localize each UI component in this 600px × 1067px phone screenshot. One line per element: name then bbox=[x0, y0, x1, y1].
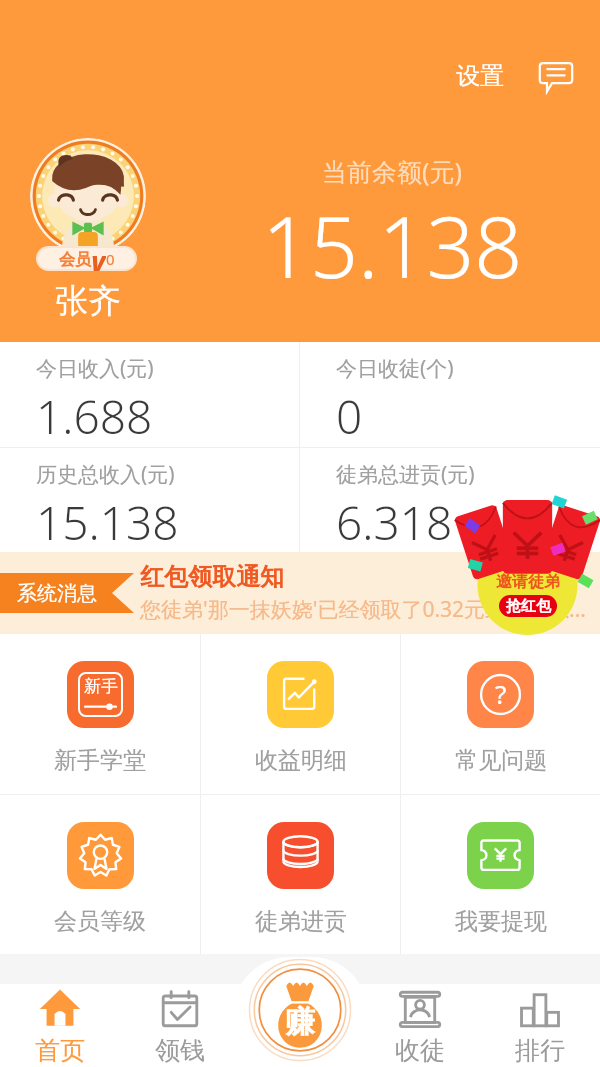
staticText: 收徒 bbox=[395, 1035, 445, 1066]
staticText: ? bbox=[495, 676, 507, 711]
staticText: 您徒弟'那一抹妖娆'已经领取了0.32元红包，系... bbox=[140, 595, 586, 624]
staticText: 系统消息 bbox=[17, 581, 97, 606]
staticText: 当前余额(元) bbox=[322, 154, 463, 188]
button[interactable]: 赚钱 bbox=[249, 959, 351, 1061]
staticText: V bbox=[91, 247, 106, 271]
staticText: 0 bbox=[336, 385, 363, 447]
staticText: 今日收徒(个) bbox=[336, 354, 454, 383]
staticText: 15.138 bbox=[262, 188, 523, 302]
button[interactable]: ? bbox=[401, 634, 600, 794]
staticText: 徒弟总进贡(元) bbox=[336, 460, 475, 489]
staticText: 0 bbox=[106, 249, 115, 269]
button[interactable]: 收益明细 bbox=[201, 634, 400, 794]
button[interactable]: 会员等级 bbox=[0, 795, 200, 954]
button[interactable]: 头像 bbox=[30, 138, 146, 254]
staticText: 今日收入(元) bbox=[36, 354, 154, 383]
staticText: 领钱 bbox=[155, 1035, 205, 1066]
staticText: 邀请徒弟 bbox=[496, 572, 560, 592]
button[interactable]: 系统消息 bbox=[0, 552, 600, 634]
staticText: 会员等级 bbox=[54, 907, 146, 936]
button[interactable]: 领钱 bbox=[120, 988, 240, 1067]
button[interactable]: 徒弟进贡 bbox=[201, 795, 400, 954]
staticText: 排行 bbox=[515, 1035, 565, 1066]
staticText: 新手 bbox=[84, 676, 118, 697]
staticText: 张齐 bbox=[30, 280, 146, 322]
staticText: 15.138 bbox=[36, 491, 179, 552]
button[interactable]: 排行 bbox=[480, 988, 600, 1067]
button[interactable]: 徒弟总进贡(元) bbox=[300, 448, 600, 552]
staticText: 首页 bbox=[35, 1035, 85, 1066]
staticText: 历史总收入(元) bbox=[36, 460, 175, 489]
button[interactable]: 消息 bbox=[534, 54, 578, 98]
staticText: 6.318 bbox=[336, 491, 453, 552]
staticText: 收益明细 bbox=[255, 746, 347, 775]
button[interactable]: 今日收徒(个) bbox=[300, 342, 600, 447]
staticText: 红包领取通知 bbox=[140, 562, 284, 592]
button[interactable]: 新手 bbox=[0, 634, 200, 794]
button[interactable]: 历史总收入(元) bbox=[0, 448, 299, 552]
staticText: 赚 bbox=[285, 1003, 315, 1041]
button[interactable]: 首页 bbox=[0, 988, 120, 1067]
staticText: 常见问题 bbox=[455, 746, 547, 775]
button[interactable]: 收徒 bbox=[360, 988, 480, 1067]
button[interactable]: 设置 bbox=[450, 55, 510, 97]
staticText: 新手学堂 bbox=[54, 746, 146, 775]
button[interactable]: 今日收入(元) bbox=[0, 342, 299, 447]
button[interactable]: 我要提现 bbox=[401, 795, 600, 954]
staticText: 设置 bbox=[456, 61, 504, 91]
staticText: 1.688 bbox=[36, 385, 153, 447]
button[interactable]: 邀请徒弟抢红包 bbox=[455, 490, 600, 622]
staticText: 会员 bbox=[59, 250, 91, 270]
staticText: 抢红包 bbox=[506, 597, 551, 616]
button[interactable]: 会员 bbox=[36, 246, 137, 271]
staticText: 徒弟进贡 bbox=[255, 907, 347, 936]
staticText: 我要提现 bbox=[455, 907, 547, 936]
